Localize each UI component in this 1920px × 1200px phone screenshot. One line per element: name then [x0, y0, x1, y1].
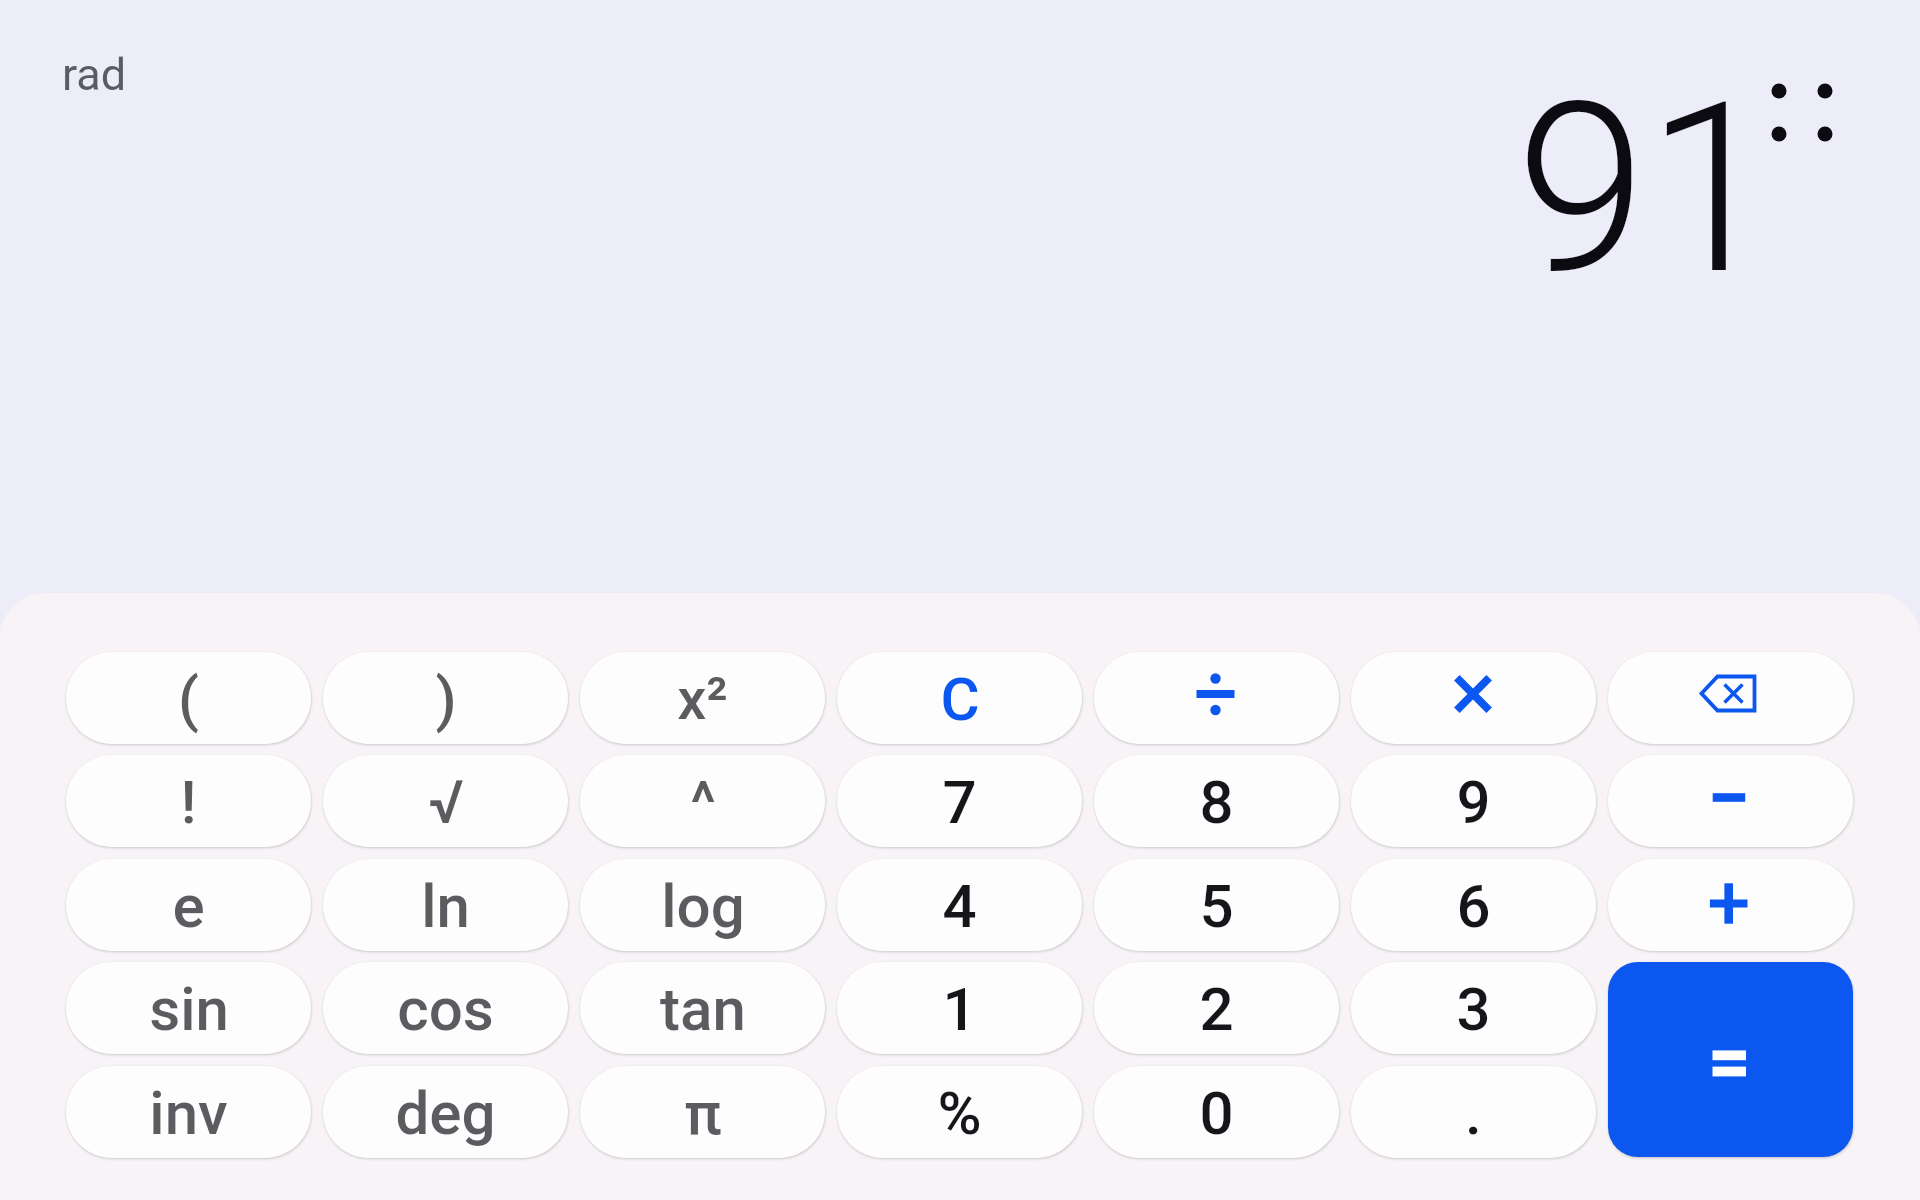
- staticText: log: [661, 871, 745, 941]
- button[interactable]: Backspace: [1608, 652, 1853, 744]
- staticText: 91: [1516, 52, 1777, 327]
- staticText: 8: [1199, 767, 1234, 837]
- staticText: 0: [1199, 1078, 1234, 1148]
- button[interactable]: 6: [1351, 859, 1596, 951]
- button[interactable]: π: [580, 1066, 825, 1158]
- button[interactable]: 5: [1094, 859, 1339, 951]
- button[interactable]: C: [837, 652, 1082, 744]
- button[interactable]: Multiply: [1351, 652, 1596, 744]
- staticText: rad: [62, 48, 127, 101]
- button[interactable]: tan: [580, 962, 825, 1054]
- staticText: !: [180, 767, 197, 837]
- button[interactable]: √: [323, 755, 568, 847]
- button[interactable]: e: [66, 859, 311, 951]
- button[interactable]: ln: [323, 859, 568, 951]
- button[interactable]: ^: [580, 755, 825, 847]
- button[interactable]: 9: [1351, 755, 1596, 847]
- staticText: %: [937, 1078, 982, 1148]
- button[interactable]: 3: [1351, 962, 1596, 1054]
- staticText: deg: [395, 1078, 496, 1148]
- button[interactable]: Minus: [1608, 755, 1853, 847]
- button[interactable]: x²: [580, 652, 825, 744]
- staticText: .: [1465, 1078, 1482, 1148]
- staticText: 2: [1199, 974, 1234, 1044]
- staticText: π: [684, 1078, 722, 1148]
- button[interactable]: cos: [323, 962, 568, 1054]
- button[interactable]: log: [580, 859, 825, 951]
- staticText: x²: [677, 665, 728, 733]
- staticText: e: [172, 871, 205, 941]
- button[interactable]: Plus: [1608, 859, 1853, 951]
- button[interactable]: inv: [66, 1066, 311, 1158]
- button[interactable]: %: [837, 1066, 1082, 1158]
- button[interactable]: Divide: [1094, 652, 1339, 744]
- button[interactable]: sin: [66, 962, 311, 1054]
- button[interactable]: 4: [837, 859, 1082, 951]
- staticText: tan: [660, 974, 746, 1044]
- staticText: cos: [397, 974, 494, 1044]
- staticText: 9: [1456, 767, 1491, 837]
- staticText: 4: [942, 871, 977, 941]
- staticText: inv: [149, 1078, 228, 1148]
- staticText: sin: [149, 974, 229, 1044]
- button[interactable]: 8: [1094, 755, 1339, 847]
- button[interactable]: 1: [837, 962, 1082, 1054]
- button[interactable]: Equals: [1608, 962, 1853, 1157]
- button[interactable]: 7: [837, 755, 1082, 847]
- button[interactable]: ): [323, 652, 568, 744]
- button[interactable]: .: [1351, 1066, 1596, 1158]
- staticText: 1: [942, 974, 977, 1044]
- button[interactable]: (: [66, 652, 311, 744]
- button[interactable]: 0: [1094, 1066, 1339, 1158]
- button[interactable]: 2: [1094, 962, 1339, 1054]
- staticText: (: [178, 664, 199, 734]
- button[interactable]: !: [66, 755, 311, 847]
- staticText: C: [940, 664, 980, 734]
- staticText: 5: [1199, 871, 1234, 941]
- staticText: 3: [1456, 974, 1491, 1044]
- button[interactable]: deg: [323, 1066, 568, 1158]
- staticText: ln: [421, 871, 470, 941]
- staticText: √: [428, 767, 464, 837]
- staticText: 6: [1456, 871, 1491, 941]
- staticText: ^: [690, 767, 716, 837]
- staticText: 7: [942, 767, 977, 837]
- staticText: ): [435, 664, 457, 734]
